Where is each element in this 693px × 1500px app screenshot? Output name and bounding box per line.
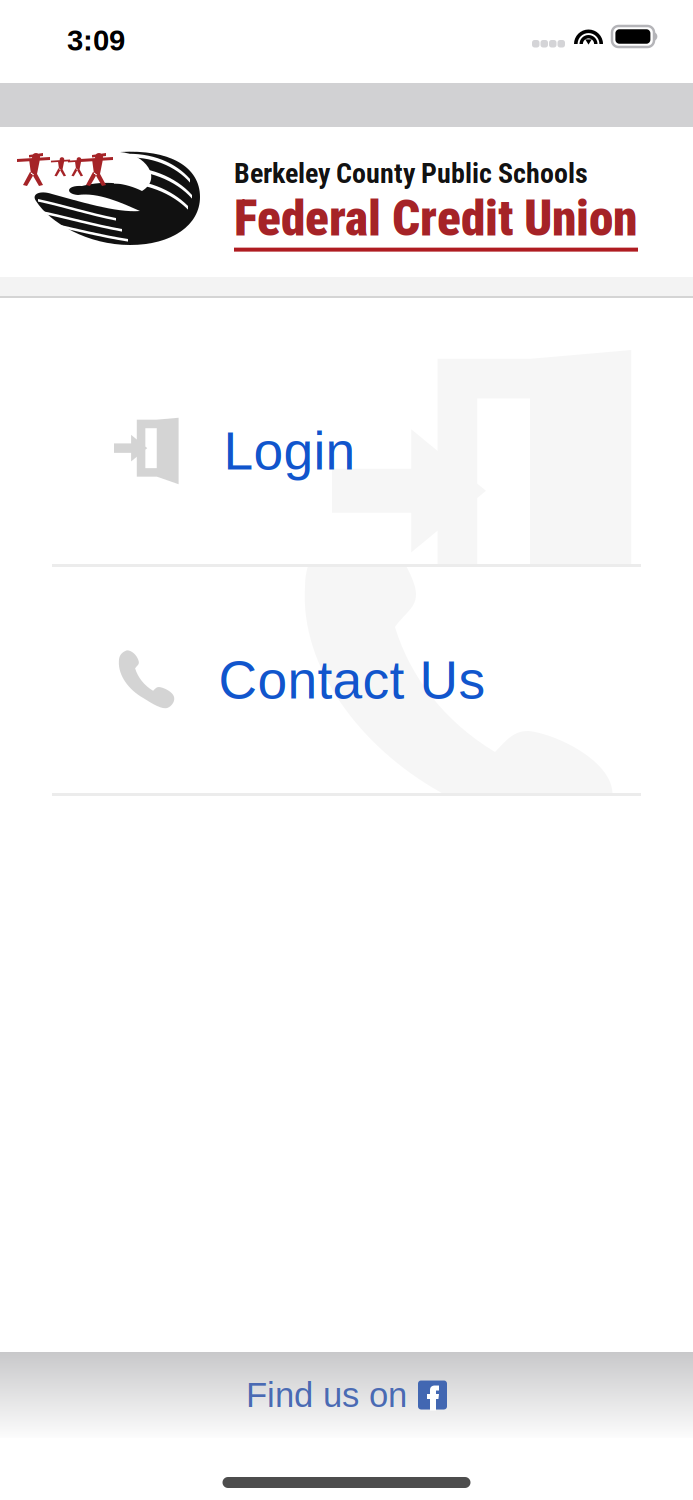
staticText: Federal Credit Union xyxy=(234,190,637,248)
staticText: Berkeley County Public Schools xyxy=(234,157,588,190)
staticText: Login xyxy=(224,421,356,481)
button[interactable]: Login xyxy=(0,338,693,564)
staticText: Find us on xyxy=(246,1376,407,1414)
staticText: 3:09 xyxy=(67,24,125,57)
button[interactable]: Contact Us xyxy=(0,567,693,793)
button[interactable]: Find us on xyxy=(0,1352,693,1438)
staticText: Contact Us xyxy=(219,650,486,710)
